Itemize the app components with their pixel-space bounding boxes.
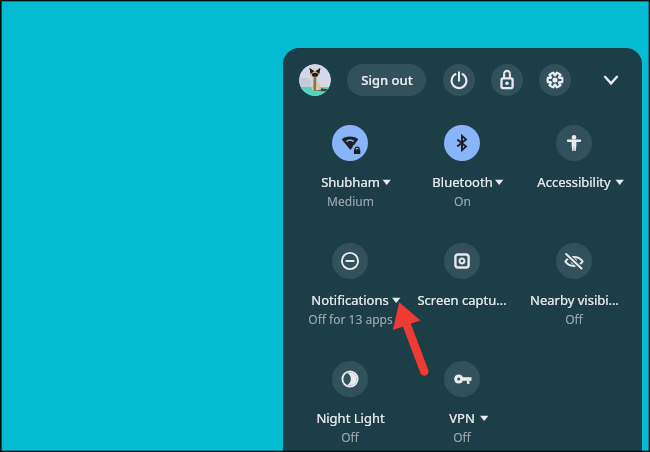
staticText: Bluetooth [432, 173, 493, 191]
button[interactable]: Accessibility [518, 118, 630, 208]
staticText: Medium [327, 193, 374, 209]
button[interactable]: Shubham [294, 118, 406, 208]
staticText: Night Light [316, 409, 385, 427]
staticText: Off [453, 429, 471, 445]
staticText: VPN [449, 409, 475, 427]
button[interactable]: Notifications [294, 236, 406, 326]
staticText: Notifications [311, 291, 389, 309]
button[interactable]: Nearby visibi… [518, 236, 630, 326]
staticText: Sign out [361, 71, 413, 89]
button[interactable]: Account avatar [299, 64, 331, 96]
staticText: Off [341, 429, 359, 445]
staticText: On [454, 193, 471, 209]
button[interactable]: Sign out [347, 64, 426, 96]
button[interactable]: Collapse [595, 64, 627, 96]
staticText: Off for 13 apps [308, 311, 393, 327]
staticText: Off [565, 311, 583, 327]
button[interactable]: Night Light [294, 354, 406, 444]
button[interactable]: Screen captu… [406, 236, 518, 326]
staticText: Nearby visibi… [530, 291, 619, 309]
button[interactable]: Settings [539, 64, 571, 96]
button[interactable]: VPN [406, 354, 518, 444]
button[interactable]: Power [443, 64, 475, 96]
staticText: Shubham [321, 173, 380, 191]
staticText: Screen captu… [417, 291, 507, 309]
button[interactable]: Lock screen [491, 64, 523, 96]
button[interactable]: Bluetooth [406, 118, 518, 208]
staticText: Accessibility [537, 173, 611, 191]
